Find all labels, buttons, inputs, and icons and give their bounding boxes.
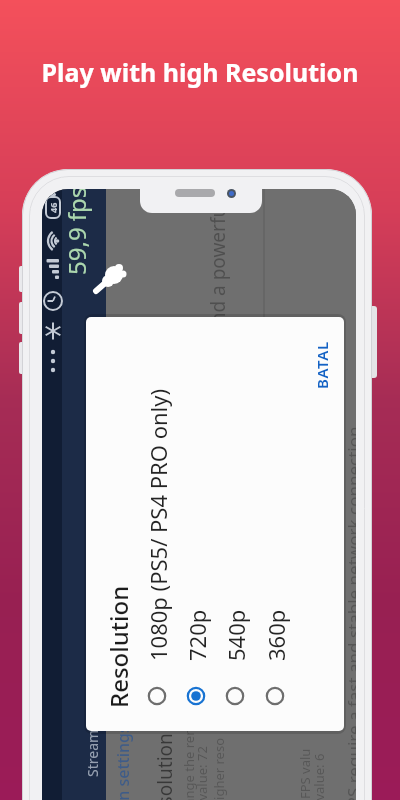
staticText: Streaming: [83, 709, 102, 777]
staticText: The FPS valu: [296, 748, 314, 800]
staticText: higher reso: [210, 737, 228, 800]
staticText: Resolution: [152, 733, 178, 800]
staticText: and a powerful: [205, 200, 231, 335]
staticText: 360p: [261, 609, 291, 661]
button[interactable]: 360p: [256, 335, 294, 715]
staticText: 540p: [221, 609, 251, 661]
button[interactable]: 720p: [177, 335, 215, 715]
button[interactable]: BATAL: [304, 327, 340, 403]
staticText: ult value: 6: [310, 753, 328, 800]
button[interactable]: 1080p (PS5/ PS4 PRO only): [138, 335, 176, 715]
staticText: Connection settings: [112, 725, 134, 800]
button[interactable]: 540p: [216, 335, 254, 715]
staticText: BATAL: [312, 341, 332, 389]
staticText: n 60 FPS require a fast and stable netwo…: [342, 421, 356, 800]
staticText: Play with high Resolution: [0, 55, 400, 89]
staticText: ult value: 72: [193, 746, 211, 800]
staticText: 59,9 fps: [60, 189, 93, 275]
staticText: Change the rem: [180, 723, 198, 800]
staticText: 1080p (PS5/ PS4 PRO only): [143, 388, 173, 661]
staticText: Resolution: [102, 585, 135, 708]
staticText: 46: [47, 202, 59, 213]
staticText: 720p: [182, 609, 212, 661]
